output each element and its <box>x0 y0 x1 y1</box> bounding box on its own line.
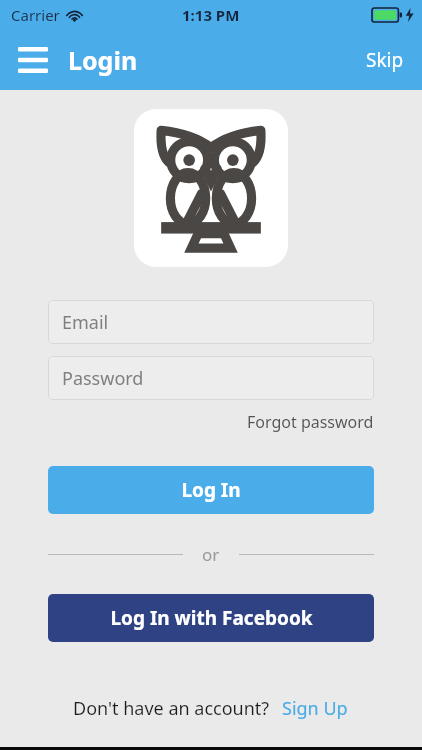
staticText: Skip <box>366 47 404 73</box>
staticText: Login <box>68 43 138 77</box>
button[interactable]: Skip <box>348 35 422 85</box>
button[interactable]: Sign Up <box>280 692 350 725</box>
staticText: Sign Up <box>282 696 348 721</box>
staticText: Log In <box>181 477 241 503</box>
button[interactable]: Log In <box>48 466 374 514</box>
button[interactable]: Open navigation menu <box>0 39 58 81</box>
staticText: Email <box>62 310 109 335</box>
button[interactable]: Log In with Facebook <box>48 594 374 642</box>
staticText: Password <box>62 366 144 391</box>
button[interactable]: Email <box>48 300 374 344</box>
staticText: Forgot password <box>247 411 374 433</box>
button[interactable]: Password <box>48 356 374 400</box>
button[interactable]: Forgot password <box>247 409 422 435</box>
staticText: Don't have an account? <box>73 696 270 721</box>
staticText: Log In with Facebook <box>110 605 313 631</box>
staticText: Carrier <box>11 5 60 25</box>
staticText: 1:13 PM <box>182 5 240 25</box>
staticText: or <box>202 543 220 566</box>
